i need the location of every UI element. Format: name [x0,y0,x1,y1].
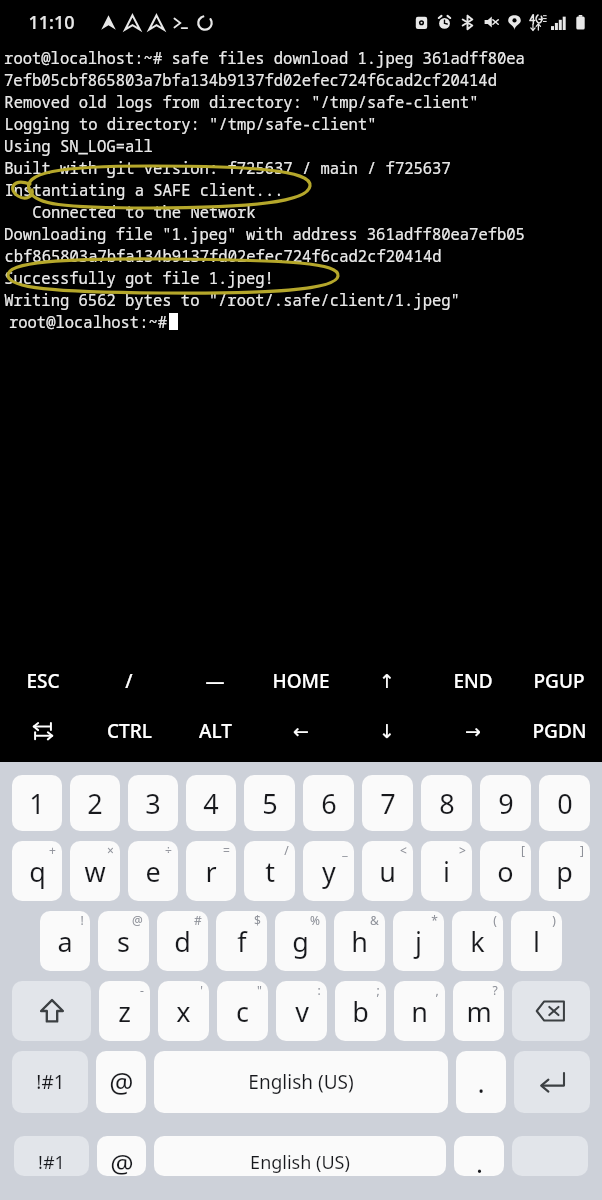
staticText: → [465,720,481,742]
button[interactable]: ESC [0,656,86,706]
button[interactable]: 7 [362,775,413,831]
button[interactable]: e [128,841,178,901]
button[interactable]: a [40,911,90,971]
button[interactable]: !#1 [14,1136,89,1176]
staticText: e [145,853,161,890]
button[interactable]: v [276,981,327,1041]
button[interactable]: !#1 [12,1051,88,1113]
button[interactable]: f [216,911,267,971]
button[interactable]: ↑ [344,656,430,706]
button[interactable]: d [157,911,208,971]
button[interactable]: z [99,981,150,1041]
staticText: CTRL [107,718,152,744]
button[interactable]: w [70,841,120,901]
staticText: a [57,923,73,960]
staticText: ↑ [379,670,395,692]
staticText: × [107,842,114,858]
button[interactable]: n [394,981,445,1041]
button[interactable]: t [244,841,295,901]
button[interactable]: r [186,841,236,901]
staticText: 7efb05cbf865803a7bfa134b9137fd02efec724f… [4,69,497,90]
button[interactable]: 3 [128,775,178,831]
button[interactable]: j [393,911,444,971]
button[interactable]: @ [97,1136,146,1176]
button[interactable]: English (US) [154,1051,448,1113]
button[interactable]: ← [258,706,344,756]
staticText: j [415,923,422,960]
button[interactable]: HOME [258,656,344,706]
staticText: ' [200,982,203,998]
staticText: 11:10 [28,10,75,35]
button[interactable]: — [172,656,258,706]
staticText: [ [521,842,525,858]
button[interactable]: PGDN [516,706,602,756]
button[interactable] [512,1136,588,1176]
button[interactable]: . [456,1051,506,1113]
staticText: ESC [26,668,60,694]
button[interactable]: q [12,841,62,901]
button[interactable]: l [511,911,562,971]
button[interactable]: / [86,656,172,706]
button[interactable]: 0 [539,775,590,831]
staticText: Downloading file "1.jpeg" with address 3… [4,223,525,244]
button[interactable]: 1 [12,775,62,831]
button[interactable]: 9 [480,775,531,831]
button[interactable]: h [334,911,385,971]
staticText: , [435,982,439,998]
staticText: !#1 [36,1069,65,1095]
staticText: : [317,982,321,998]
staticText: g [292,923,309,960]
staticText: Connected to the Network [4,201,256,222]
button[interactable]: CTRL [86,706,172,756]
button[interactable]: Shift [12,981,91,1041]
staticText: o [497,853,514,890]
button[interactable]: o [480,841,531,901]
button[interactable]: y [303,841,354,901]
staticText: c [236,993,249,1030]
button[interactable]: ↓ [344,706,430,756]
staticText: " [257,982,262,998]
staticText: d [174,923,191,960]
staticText: Removed old logs from directory: "/tmp/s… [4,91,479,112]
button[interactable]: @ [96,1051,146,1113]
button[interactable]: 5 [244,775,295,831]
staticText: Writing 6562 bytes to "/root/.safe/clien… [4,289,460,310]
staticText: END [453,668,493,694]
button[interactable]: 6 [303,775,354,831]
button[interactable]: k [452,911,503,971]
button[interactable]: 8 [421,775,472,831]
button[interactable]: END [430,656,516,706]
button[interactable]: 2 [70,775,120,831]
button[interactable]: i [421,841,472,901]
staticText: $ [254,912,261,928]
button[interactable]: u [362,841,413,901]
staticText: # [194,912,202,928]
button[interactable]: → [430,706,516,756]
staticText: % [310,912,320,928]
button[interactable]: s [98,911,149,971]
staticText: PGDN [532,718,587,744]
staticText: ] [580,842,584,858]
button[interactable]: Enter [514,1051,590,1113]
staticText: y [322,853,336,890]
staticText: PGUP [533,668,585,694]
button[interactable]: 4 [186,775,236,831]
staticText: 8 [439,785,455,822]
button[interactable]: English (US) [154,1136,446,1176]
staticText: !#1 [38,1150,65,1175]
button[interactable]: x [158,981,209,1041]
staticText: 7 [380,785,396,822]
button[interactable]: c [217,981,268,1041]
staticText: z [118,993,131,1030]
button[interactable]: m [453,981,504,1041]
staticText: f [237,923,247,960]
button[interactable]: b [335,981,386,1041]
button[interactable]: Tab [0,706,86,756]
button[interactable]: PGUP [516,656,602,706]
button[interactable]: ALT [172,706,258,756]
button[interactable]: . [454,1136,504,1176]
button[interactable]: p [539,841,590,901]
button[interactable]: Backspace [512,981,590,1041]
staticText: 1 [29,785,45,822]
button[interactable]: g [275,911,326,971]
